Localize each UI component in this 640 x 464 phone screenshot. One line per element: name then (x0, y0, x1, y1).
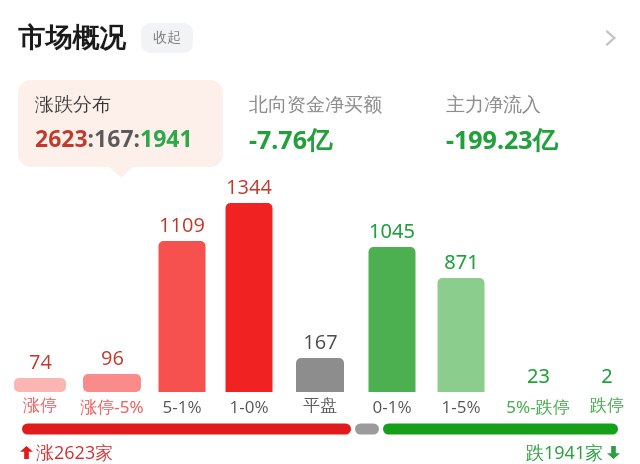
staticText: 1344 (226, 173, 272, 200)
staticText: 跌停 (559, 395, 640, 416)
button[interactable]: 主力净流入 (430, 80, 620, 167)
button[interactable]: 涨跌分布 (18, 80, 223, 167)
staticText: -199.23亿 (446, 122, 558, 156)
staticText: 1-5% (413, 395, 509, 418)
staticText: 收起 (153, 29, 181, 47)
staticText: 主力净流入 (446, 93, 541, 117)
staticText: 74 (29, 348, 52, 375)
button[interactable]: 5-1% (134, 395, 230, 418)
staticText: 1-0% (201, 395, 297, 418)
button[interactable]: 收起 (141, 23, 193, 53)
staticText: 涨停-5% (64, 395, 160, 418)
staticText: -7.76亿 (249, 122, 332, 156)
button[interactable]: 1-0% (201, 395, 297, 418)
staticText: 167 (303, 328, 338, 355)
staticText: 96 (101, 344, 124, 371)
staticText: 871 (444, 248, 479, 275)
button[interactable]: 0-1% (344, 395, 440, 418)
staticText: 涨停 (0, 395, 88, 416)
staticText: 5%-跌停 (490, 395, 586, 418)
staticText: 1045 (369, 217, 415, 244)
button[interactable]: 涨停-5% (64, 395, 160, 418)
staticText: 北向资金净买额 (249, 93, 382, 117)
staticText: 市场概况 (18, 21, 126, 55)
staticText: 涨2623家 (36, 440, 114, 464)
button[interactable]: 涨2623家 (20, 440, 114, 464)
button[interactable]: 5%-跌停 (490, 395, 586, 418)
button[interactable]: 展开更多 (590, 18, 630, 58)
staticText: 跌1941家 (526, 440, 604, 464)
button[interactable]: 1-5% (413, 395, 509, 418)
staticText: 23 (527, 362, 550, 389)
staticText: 1109 (159, 211, 205, 238)
button[interactable]: 涨停 (0, 395, 88, 416)
staticText: 0-1% (344, 395, 440, 418)
staticText: 2623:167:1941 (35, 122, 193, 153)
button[interactable]: 北向资金净买额 (233, 80, 420, 167)
staticText: 平盘 (272, 395, 368, 416)
staticText: 涨跌分布 (35, 93, 111, 117)
staticText: 2 (601, 362, 613, 389)
button[interactable]: 跌1941家 (526, 440, 620, 464)
button[interactable]: 平盘 (272, 395, 368, 416)
button[interactable]: 跌停 (559, 395, 640, 416)
staticText: 5-1% (134, 395, 230, 418)
